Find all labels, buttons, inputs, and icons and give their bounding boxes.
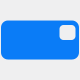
button[interactable]: Toggle xyxy=(1,20,79,59)
